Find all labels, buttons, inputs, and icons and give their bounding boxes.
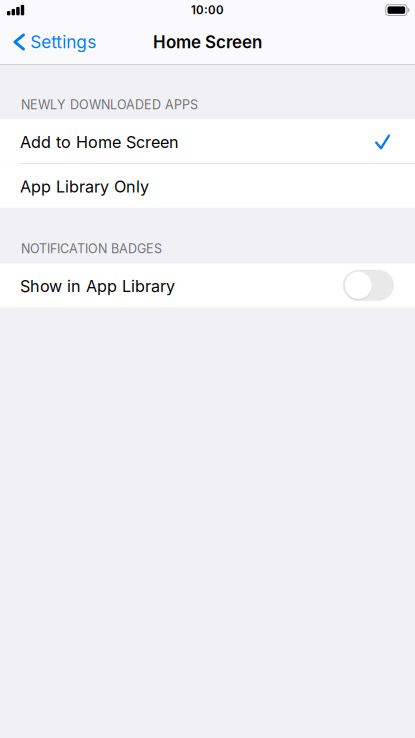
staticText: Settings bbox=[30, 32, 96, 52]
button[interactable]: App Library Only bbox=[0, 164, 415, 208]
staticText: 10:00 bbox=[191, 3, 224, 17]
button[interactable]: Show in App Library bbox=[0, 263, 415, 307]
staticText: NOTIFICATION BADGES bbox=[21, 241, 162, 256]
button[interactable]: Add to Home Screen bbox=[0, 119, 415, 163]
button[interactable]: Settings bbox=[0, 20, 106, 64]
staticText: App Library Only bbox=[20, 177, 149, 196]
staticText: NEWLY DOWNLOADED APPS bbox=[21, 97, 198, 112]
staticText: Home Screen bbox=[153, 32, 262, 52]
staticText: Show in App Library bbox=[20, 276, 175, 296]
staticText: Add to Home Screen bbox=[20, 132, 179, 152]
